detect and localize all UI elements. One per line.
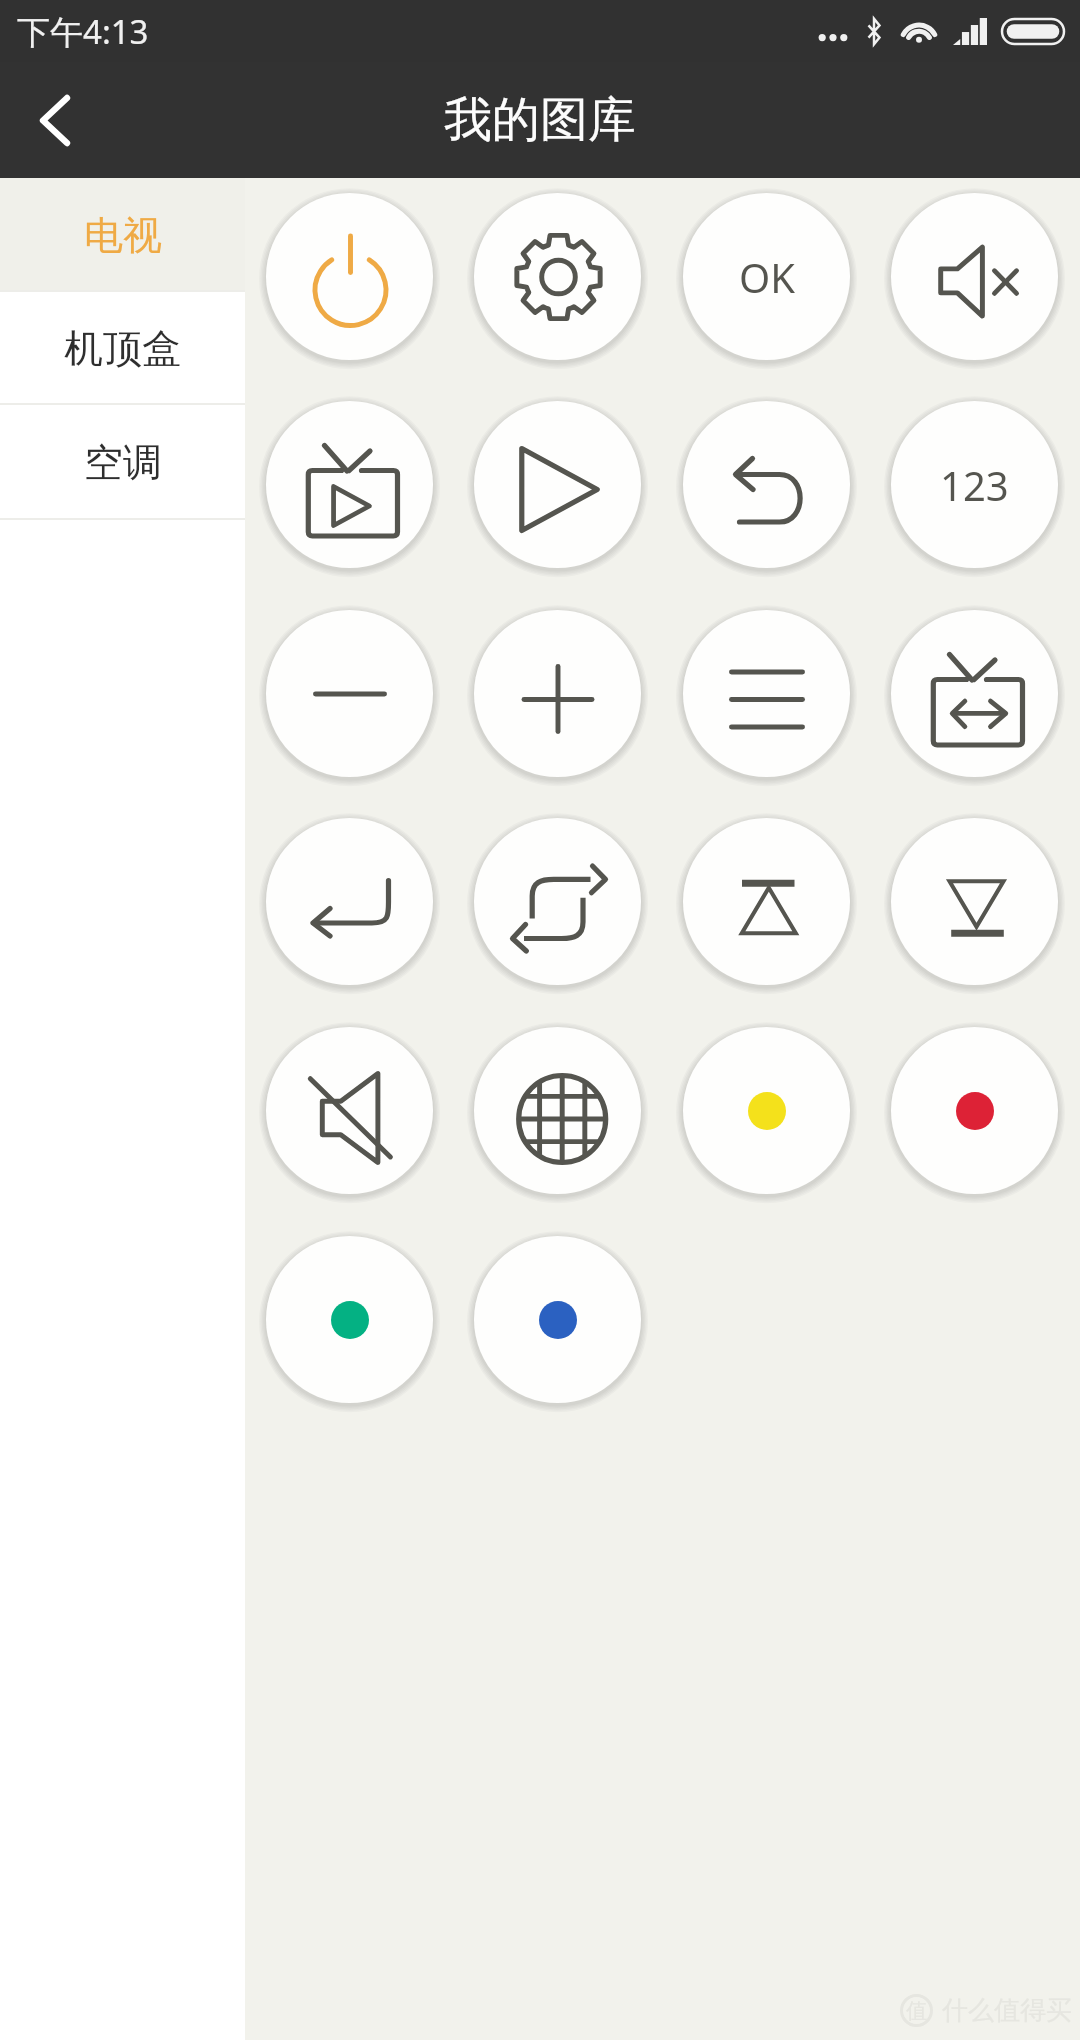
button[interactable]: Volume down [266, 610, 433, 777]
button[interactable]: Yellow [683, 1027, 850, 1194]
button[interactable]: Page up [683, 818, 850, 985]
staticText: 下午4:13 [17, 9, 149, 54]
button[interactable]: Red [891, 1027, 1058, 1194]
button[interactable]: OK [683, 193, 850, 360]
button[interactable]: Silent [266, 1027, 433, 1194]
button[interactable]: Aspect [891, 610, 1058, 777]
button[interactable]: Green [266, 1236, 433, 1403]
button[interactable]: 空调 [0, 405, 245, 520]
button[interactable]: Network [474, 1027, 641, 1194]
button[interactable]: Power [266, 193, 433, 360]
staticText: 电视 [84, 211, 162, 260]
button[interactable]: Enter [266, 818, 433, 985]
staticText: 什么值得买 [942, 1994, 1072, 2027]
button[interactable]: Back [683, 401, 850, 568]
staticText: 我的图库 [444, 90, 636, 150]
button[interactable]: Back [0, 65, 110, 175]
button[interactable]: 电视 [0, 178, 245, 292]
button[interactable]: Swap [474, 818, 641, 985]
button[interactable]: Mute [891, 193, 1058, 360]
button[interactable]: 机顶盒 [0, 292, 245, 405]
staticText: OK [739, 250, 795, 304]
button[interactable]: Play [474, 401, 641, 568]
button[interactable]: Numbers [891, 401, 1058, 568]
staticText: 空调 [84, 438, 162, 487]
button[interactable]: TV source [266, 401, 433, 568]
button[interactable]: Volume up [474, 610, 641, 777]
staticText: 123 [940, 458, 1009, 512]
button[interactable]: Blue [474, 1236, 641, 1403]
button[interactable]: Menu [683, 610, 850, 777]
staticText: 值 [906, 1998, 927, 2024]
button[interactable]: Page down [891, 818, 1058, 985]
button[interactable]: Settings [474, 193, 641, 360]
staticText: 机顶盒 [64, 324, 181, 373]
